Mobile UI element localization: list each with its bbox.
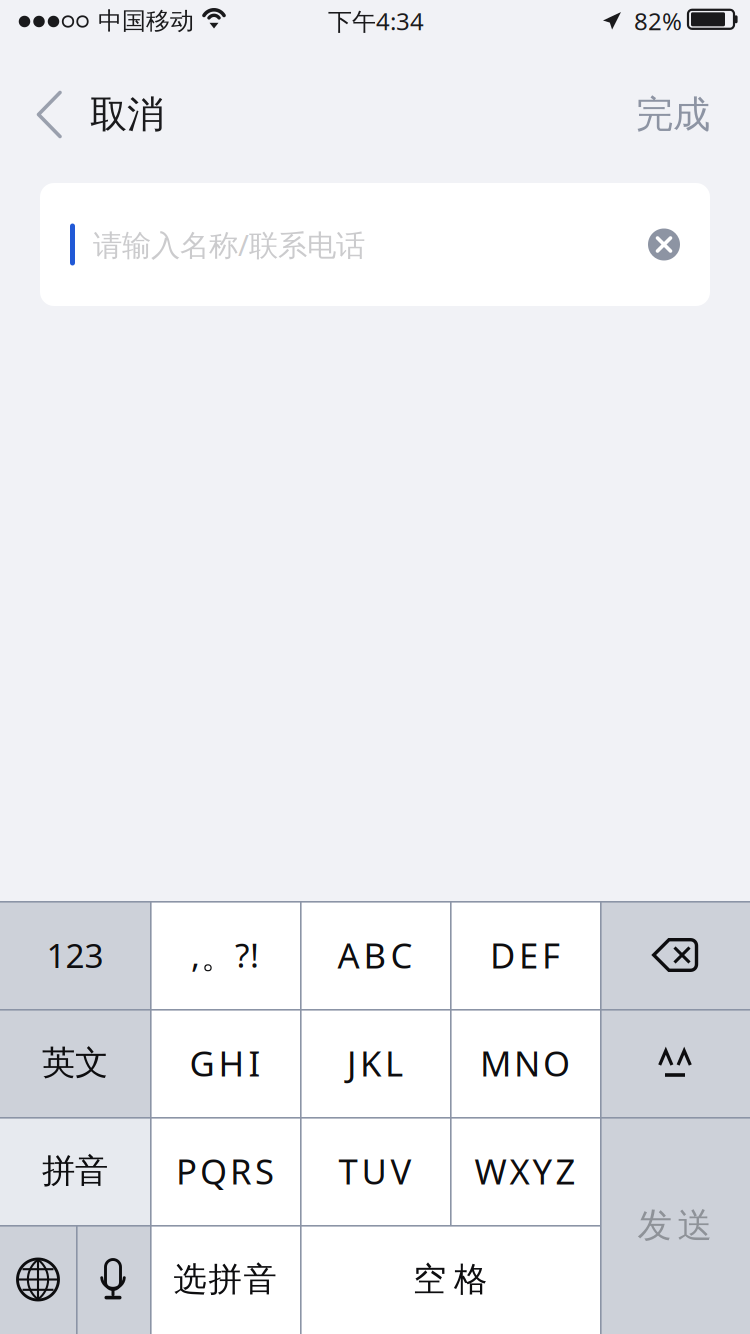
staticText: 发送 [637,1204,712,1247]
staticText: 请输入名称/联系电话 [93,225,365,264]
button[interactable]: 取消 [0,75,182,153]
staticText: MNO [480,1040,570,1086]
staticText: JKL [347,1040,403,1086]
staticText: 123 [46,933,103,977]
staticText: 选拼音 [173,1259,276,1300]
staticText: GHI [189,1040,260,1086]
staticText: PQRS [176,1148,274,1194]
staticText: 下午4:34 [328,5,424,37]
staticText: 空格 [413,1259,487,1300]
button[interactable]: GHI [150,1009,300,1117]
button[interactable]: 选拼音 [150,1225,300,1334]
staticText: DEF [490,932,560,978]
button[interactable]: PQRS [150,1117,300,1225]
staticText: 82% [634,5,682,37]
staticText: ABC [337,932,412,978]
staticText: TUV [338,1148,411,1194]
button[interactable]: MNO [450,1009,600,1117]
button[interactable]: ,。?! [150,901,300,1009]
button[interactable]: 发送 [600,1117,750,1334]
button[interactable]: 切换键盘 [0,1225,76,1334]
staticText: 中国移动 [98,6,194,36]
staticText: 取消 [90,92,164,137]
button[interactable]: 拼音 [0,1117,150,1225]
button[interactable]: ABC [300,901,450,1009]
button[interactable]: TUV [300,1117,450,1225]
button[interactable]: JKL [300,1009,450,1117]
button[interactable]: 清除 [629,209,699,279]
staticText: 完成 [636,92,710,137]
button[interactable]: 表情 [600,1009,750,1117]
button[interactable]: 删除 [600,901,750,1009]
staticText: WXYZ [474,1148,575,1194]
button[interactable]: 英文 [0,1009,150,1117]
button[interactable]: 空格 [300,1225,600,1334]
button[interactable]: 完成 [606,75,750,153]
button[interactable]: 123 [0,901,150,1009]
button[interactable]: DEF [450,901,600,1009]
staticText: 英文 [42,1042,108,1083]
staticText: ,。?! [191,933,259,977]
button[interactable]: WXYZ [450,1117,600,1225]
button[interactable]: 语音输入 [76,1225,150,1334]
staticText: 拼音 [42,1150,108,1191]
